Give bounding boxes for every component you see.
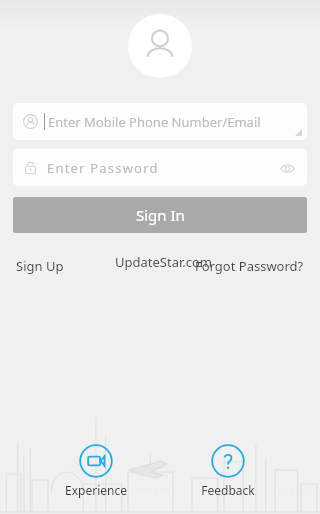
button[interactable]: Feedback bbox=[191, 442, 265, 500]
button[interactable]: Show password bbox=[275, 156, 299, 180]
button[interactable]: Sign In bbox=[13, 197, 307, 233]
button[interactable]: Enter Password bbox=[13, 149, 307, 186]
staticText: Sign Up bbox=[16, 257, 64, 275]
staticText: Sign In bbox=[136, 205, 185, 225]
button[interactable]: Sign Up bbox=[12, 254, 68, 278]
staticText: UpdateStar.com bbox=[115, 253, 212, 271]
staticText: Feedback bbox=[201, 482, 255, 498]
button[interactable]: Experience bbox=[55, 442, 137, 500]
staticText: Enter Mobile Phone Number/Email bbox=[48, 113, 261, 131]
button[interactable]: Forgot Password? bbox=[191, 254, 308, 278]
staticText: Experience bbox=[65, 482, 127, 498]
staticText: Enter Password bbox=[47, 159, 159, 177]
button[interactable]: Profile avatar bbox=[128, 14, 192, 78]
staticText: Forgot Password? bbox=[195, 257, 304, 275]
button[interactable]: Enter Mobile Phone Number/Email bbox=[13, 103, 307, 140]
